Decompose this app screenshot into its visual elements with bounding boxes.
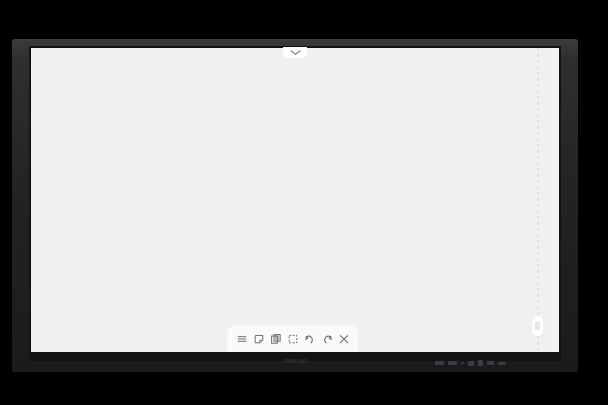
button[interactable]: Menu: [236, 333, 248, 345]
button[interactable]: Copy page: [270, 333, 282, 345]
button[interactable]: New page: [253, 333, 265, 345]
staticText: SAMSUNG: [283, 358, 308, 364]
button[interactable]: Redo: [321, 333, 333, 345]
button[interactable]: Undo: [304, 333, 316, 345]
button[interactable]: Select area: [287, 333, 299, 345]
button[interactable]: Show menu: [283, 47, 307, 58]
button[interactable]: Close: [338, 333, 350, 345]
button[interactable]: Side handle: [532, 316, 543, 336]
